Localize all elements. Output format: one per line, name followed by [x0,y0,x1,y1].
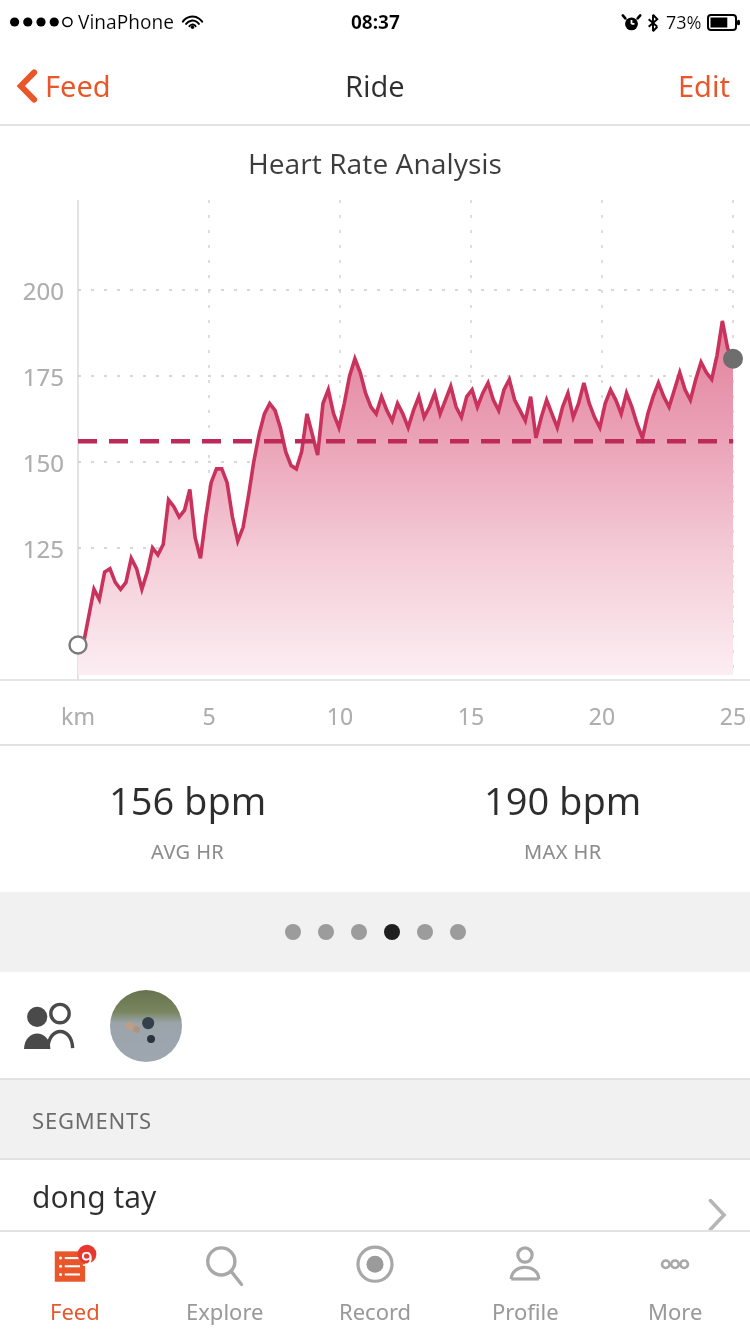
staticText: 200 [12,274,64,307]
staticText: AVG HR [151,838,225,865]
button[interactable]: Explore [150,1230,300,1336]
staticText: More [648,1296,703,1326]
staticText: Feed [45,66,111,105]
staticText: Profile [492,1296,559,1326]
other: More [652,1244,698,1290]
button[interactable]: dong tay [0,1160,750,1270]
button[interactable]: Record [300,1230,450,1336]
staticText: 125 [12,532,64,565]
staticText: 10 [300,700,380,731]
staticText: 190 bpm [484,774,642,826]
staticText: 20 [562,700,642,731]
button[interactable]: Page 6 [450,924,466,940]
button[interactable]: Edit [658,54,750,117]
staticText: Explore [186,1296,264,1326]
button[interactable]: Feed [0,56,129,115]
staticText: km [38,700,118,731]
button[interactable]: Profile [450,1230,600,1336]
staticText: 175 [12,360,64,393]
button[interactable]: More [600,1230,750,1336]
other: Profile [502,1244,548,1290]
button[interactable]: Athlete avatar [110,990,182,1062]
staticText: Ride [345,66,405,105]
button[interactable]: Page 4 [384,924,400,940]
staticText: 73% [666,10,702,35]
button[interactable]: 9 [0,1230,150,1336]
other: Open segment [706,1196,728,1234]
staticText: Heart Rate Analysis [248,144,502,182]
staticText: Record [339,1296,412,1326]
staticText: dong tay [32,1176,157,1217]
button[interactable]: 190 bpm [375,746,750,892]
staticText: Feed [50,1296,100,1326]
other: Explore [202,1244,248,1290]
staticText: 150 [12,446,64,479]
staticText: 25 [693,700,750,731]
staticText: 08:37 [351,9,400,35]
button[interactable]: Page 5 [417,924,433,940]
staticText: MAX HR [524,838,602,865]
button[interactable]: Page 2 [318,924,334,940]
staticText: 9 [81,1245,93,1272]
button[interactable]: Kudos [24,1003,84,1049]
button[interactable]: Page 3 [351,924,367,940]
button[interactable]: 156 bpm [0,746,375,892]
button[interactable]: Page 1 [285,924,301,940]
staticText: 5 [169,700,249,731]
staticText: 15 [431,700,511,731]
staticText: 156 bpm [109,774,267,826]
staticText: Edit [678,66,730,105]
staticText: VinaPhone [78,9,174,35]
other: Record [352,1244,398,1290]
staticText: SEGMENTS [32,1105,152,1135]
staticText: 13.3 km 19:39 39.6 km/h [32,1229,321,1260]
